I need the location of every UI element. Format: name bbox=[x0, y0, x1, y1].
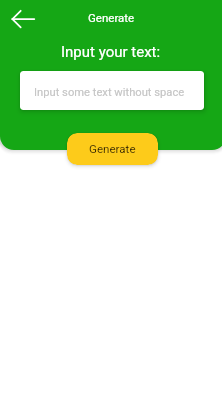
button[interactable]: Back bbox=[4, 4, 42, 36]
staticText: Input your text: bbox=[61, 43, 161, 61]
staticText: Input some text without space bbox=[34, 86, 185, 99]
staticText: Generate bbox=[89, 142, 136, 156]
button[interactable]: Input some text without space bbox=[20, 71, 204, 110]
button[interactable]: Generate bbox=[67, 133, 158, 165]
staticText: Generate bbox=[88, 11, 135, 24]
